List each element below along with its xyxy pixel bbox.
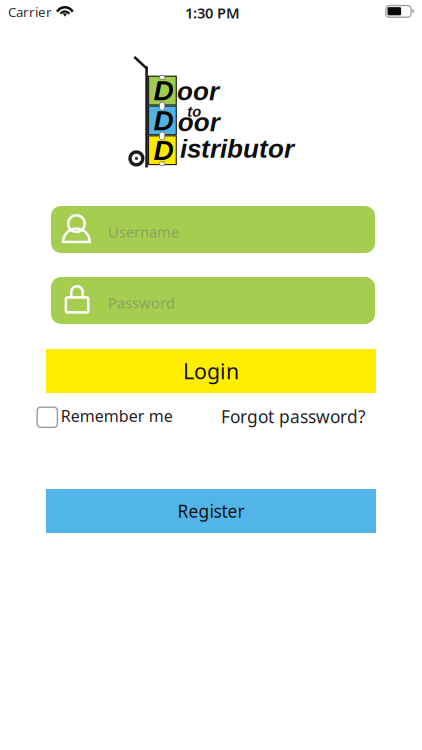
button[interactable]: Login <box>46 349 376 393</box>
button[interactable]: Username <box>51 206 375 253</box>
staticText: istributor <box>180 134 294 163</box>
staticText: D <box>153 105 173 136</box>
staticText: 1:30 PM <box>185 3 240 22</box>
staticText: to <box>187 103 201 120</box>
staticText: Password <box>108 293 175 312</box>
staticText: D <box>153 75 173 106</box>
button[interactable]: Register <box>46 489 376 533</box>
staticText: Carrier <box>8 3 52 21</box>
staticText: Login <box>183 357 239 385</box>
staticText: Forgot password? <box>221 405 366 428</box>
staticText: Username <box>108 222 179 241</box>
button[interactable]: Forgot password? <box>221 405 391 429</box>
staticText: oor <box>178 108 220 137</box>
button[interactable]: Password <box>51 277 375 324</box>
staticText: Remember me <box>61 405 173 426</box>
button[interactable]: Remember me <box>36 406 186 430</box>
staticText: oor <box>177 77 219 106</box>
staticText: Register <box>177 499 244 522</box>
staticText: D <box>153 135 173 166</box>
